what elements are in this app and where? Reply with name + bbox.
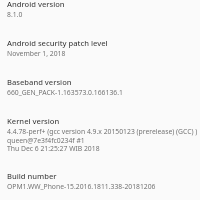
button[interactable]: Build number — [0, 171, 200, 191]
staticText: Baseband version — [7, 77, 72, 87]
button[interactable]: Kernel version — [0, 116, 200, 153]
button[interactable]: Baseband version — [0, 77, 200, 97]
staticText: Build number — [7, 171, 57, 181]
staticText: 8.1.0 — [7, 10, 23, 19]
staticText: 4.4.78-perf+ (gcc version 4.9.x 20150123… — [7, 127, 198, 153]
staticText: Android security patch level — [7, 38, 108, 48]
staticText: Android version — [7, 0, 65, 9]
button[interactable]: Android version — [0, 0, 200, 19]
staticText: 660_GEN_PACK-1.163573.0.166136.1 — [7, 88, 123, 97]
staticText: OPM1.WW_Phone-15.2016.1811.338-20181206 — [7, 182, 156, 191]
staticText: Kernel version — [7, 116, 60, 126]
button[interactable]: Android security patch level — [0, 38, 200, 58]
staticText: November 1, 2018 — [7, 49, 66, 58]
